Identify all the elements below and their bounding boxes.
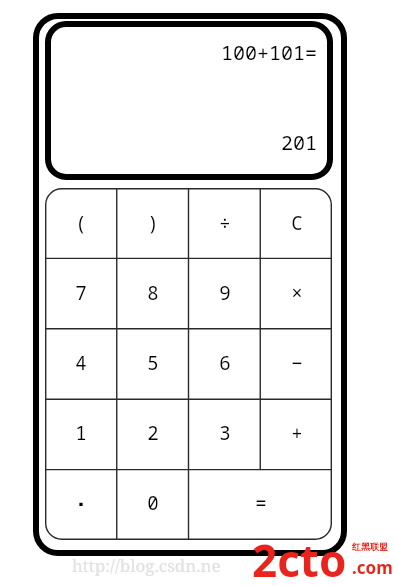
staticText: 7 <box>75 280 87 306</box>
staticText: 201 <box>57 129 317 156</box>
button[interactable]: 7 <box>45 258 117 328</box>
staticText: ( <box>75 210 87 236</box>
button[interactable]: 8 <box>117 258 189 328</box>
button[interactable]: 9 <box>189 258 261 328</box>
button[interactable]: 5 <box>117 328 189 398</box>
staticText: http://blog.csdn.ne <box>72 554 221 577</box>
button[interactable]: Divide <box>189 188 261 258</box>
button[interactable]: 6 <box>189 328 261 398</box>
button[interactable]: Decimal point <box>45 468 117 538</box>
staticText: 2cto <box>252 530 347 580</box>
staticText: .com <box>352 556 393 578</box>
staticText: × <box>291 280 303 306</box>
button[interactable]: Close parenthesis <box>117 188 189 258</box>
staticText: 5 <box>147 350 159 376</box>
staticText: C <box>291 210 303 236</box>
staticText: 2 <box>147 420 159 446</box>
staticText: 6 <box>219 350 231 376</box>
button[interactable]: Multiply <box>261 258 332 328</box>
staticText: − <box>291 350 303 376</box>
staticText: 9 <box>219 280 231 306</box>
button[interactable]: Open parenthesis <box>45 188 117 258</box>
button[interactable]: Add <box>261 398 332 468</box>
button[interactable]: 3 <box>189 398 261 468</box>
staticText: = <box>255 490 267 516</box>
staticText: 3 <box>219 420 231 446</box>
staticText: ) <box>147 210 159 236</box>
staticText: 4 <box>75 350 87 376</box>
staticText: ÷ <box>219 210 231 236</box>
staticText: 0 <box>147 490 159 516</box>
button[interactable]: 0 <box>117 468 189 538</box>
staticText: 8 <box>147 280 159 306</box>
staticText: 1 <box>75 420 87 446</box>
staticText: 红黑联盟 <box>352 541 388 552</box>
button[interactable]: 1 <box>45 398 117 468</box>
button[interactable]: Equals <box>189 468 332 538</box>
button[interactable]: 2 <box>117 398 189 468</box>
staticText: 100+101= <box>57 39 317 66</box>
button[interactable]: 4 <box>45 328 117 398</box>
staticText: + <box>291 420 303 446</box>
button[interactable]: Subtract <box>261 328 332 398</box>
button[interactable]: Clear <box>261 188 332 258</box>
